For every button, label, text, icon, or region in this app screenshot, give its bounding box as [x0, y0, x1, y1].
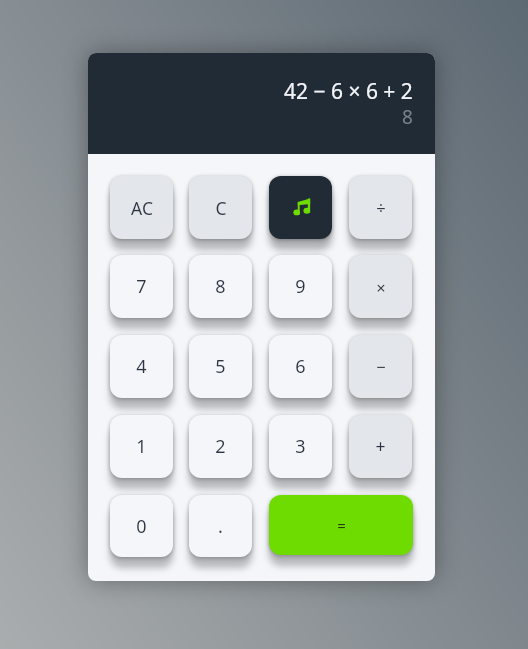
button[interactable]: 6 [269, 335, 332, 398]
staticText: . [218, 514, 223, 539]
staticText: = [337, 515, 346, 535]
staticText: 7 [136, 274, 147, 299]
button[interactable]: = [269, 495, 413, 555]
button[interactable]: ÷ [349, 176, 412, 239]
staticText: ÷ [376, 196, 386, 218]
button[interactable]: 0 [110, 495, 173, 557]
staticText: 1 [136, 434, 147, 459]
staticText: AC [131, 196, 153, 220]
button[interactable]: Sound [269, 176, 332, 239]
button[interactable]: − [349, 335, 412, 398]
button[interactable]: + [349, 415, 412, 478]
staticText: − [376, 355, 386, 377]
staticText: 9 [295, 274, 306, 299]
staticText: 3 [295, 434, 306, 459]
staticText: + [375, 434, 386, 458]
staticText: C [215, 196, 227, 220]
button[interactable]: 2 [189, 415, 252, 478]
button[interactable]: 7 [110, 255, 173, 318]
button[interactable]: . [189, 495, 252, 557]
staticText: 4 [136, 354, 147, 379]
button[interactable]: × [349, 255, 412, 318]
staticText: 42 − 6 × 6 + 2 [284, 77, 413, 106]
button[interactable]: 9 [269, 255, 332, 318]
button[interactable]: 4 [110, 335, 173, 398]
staticText: 0 [136, 514, 147, 539]
staticText: 6 [295, 354, 306, 379]
staticText: 8 [402, 104, 413, 130]
staticText: 5 [215, 354, 226, 379]
button[interactable]: 3 [269, 415, 332, 478]
staticText: 8 [215, 274, 226, 299]
staticText: 2 [215, 434, 226, 459]
button[interactable]: 8 [189, 255, 252, 318]
button[interactable]: 5 [189, 335, 252, 398]
button[interactable]: 1 [110, 415, 173, 478]
staticText: × [376, 276, 386, 298]
button[interactable]: AC [110, 176, 173, 239]
button[interactable]: C [189, 176, 252, 239]
